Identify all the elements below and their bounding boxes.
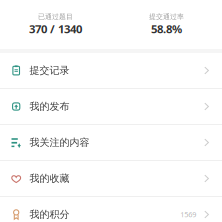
staticText: 我的发布	[29, 100, 69, 113]
staticText: 58.8%	[151, 21, 182, 36]
staticText: 1569	[180, 209, 196, 219]
button[interactable]: 我的收藏	[0, 161, 222, 196]
staticText: 我的积分	[29, 208, 69, 221]
button[interactable]: 我关注的内容	[0, 125, 222, 160]
button[interactable]: 提交记录	[0, 53, 222, 88]
staticText: 370 / 1340	[29, 21, 82, 36]
staticText: 已通过题目	[38, 12, 73, 21]
button[interactable]: 我的积分	[0, 197, 222, 222]
staticText: 我关注的内容	[29, 136, 89, 149]
staticText: 我的收藏	[29, 172, 69, 185]
staticText: 提交通过率	[149, 12, 184, 21]
button[interactable]: 我的发布	[0, 89, 222, 124]
staticText: 提交记录	[29, 64, 69, 77]
